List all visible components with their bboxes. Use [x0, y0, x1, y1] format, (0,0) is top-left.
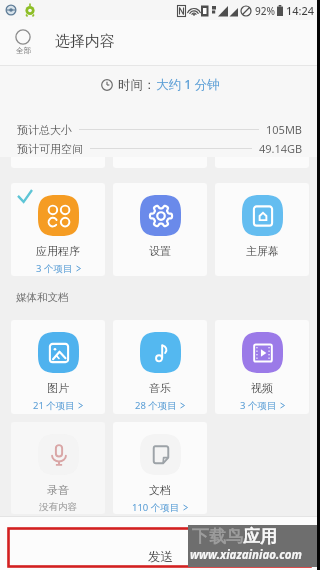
staticText: 图片 — [47, 381, 69, 395]
staticText: 发送 — [148, 549, 173, 565]
staticText: 选择内容 — [55, 32, 115, 51]
button[interactable]: 设置 — [113, 183, 207, 276]
staticText: 92% — [255, 4, 275, 18]
button[interactable]: 图片 — [11, 320, 105, 414]
staticText: 应用程序 — [36, 244, 80, 258]
staticText: 时间： — [118, 77, 156, 93]
staticText: 105MB — [266, 122, 303, 137]
button[interactable]: 主屏幕 — [215, 183, 309, 276]
staticText: 视频 — [251, 381, 273, 395]
staticText: 49.14GB — [259, 141, 303, 156]
staticText: 音乐 — [149, 381, 171, 395]
button[interactable]: 发送 — [0, 516, 320, 570]
staticText: 预计可用空间 — [17, 142, 83, 156]
staticText: 媒体和文档 — [16, 291, 69, 304]
staticText: 设置 — [149, 244, 171, 258]
button[interactable]: 应用程序 — [11, 183, 105, 276]
button[interactable]: Select all — [11, 26, 35, 58]
staticText: 21 个项目 — [33, 399, 75, 412]
staticText: 110 个项目 — [132, 501, 180, 514]
staticText: 14:24 — [286, 3, 315, 18]
staticText: 下载鸟 — [192, 526, 243, 547]
staticText: www.xiazainiao.com — [190, 547, 302, 563]
button[interactable]: 视频 — [215, 320, 309, 414]
staticText: 录音 — [47, 483, 69, 497]
staticText: 28 个项目 — [135, 399, 177, 412]
button[interactable]: 文档 — [113, 422, 207, 514]
staticText: 3 个项目 — [240, 399, 277, 412]
button[interactable]: 音乐 — [113, 320, 207, 414]
staticText: 主屏幕 — [246, 244, 279, 258]
staticText: 预计总大小 — [17, 123, 72, 137]
button[interactable]: 录音 — [11, 422, 105, 514]
staticText: 没有内容 — [39, 501, 77, 513]
staticText: 全部 — [16, 46, 31, 55]
staticText: 应用 — [243, 526, 277, 547]
staticText: 3 个项目 — [36, 262, 73, 275]
staticText: 文档 — [149, 483, 171, 497]
staticText: 大约 1 分钟 — [156, 76, 220, 93]
